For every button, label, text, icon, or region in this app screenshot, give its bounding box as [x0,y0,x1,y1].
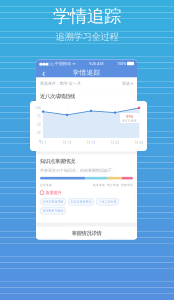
button[interactable]: 筛选 ▾ [122,81,133,86]
staticText: 10.25 [110,141,119,144]
staticText: 一元二次方程 [98,200,116,203]
staticText: 急需提升 [45,190,61,195]
staticText: 50 [37,123,41,126]
staticText: 91% [126,114,133,119]
staticText: 共有语文31个知识点，你的掌握情况如下： [40,168,116,173]
staticText: 10.16 [86,141,95,144]
staticText: 10.14 [62,141,71,144]
staticText: 学情追踪 [53,6,121,27]
staticText: 部分掌握 [105,183,119,187]
staticText: 10.30 [134,141,143,144]
staticText: 0 [39,139,41,143]
staticText: 病句辨析与修改 [42,209,63,212]
staticText: 文言文虚词用法 [70,200,91,203]
staticText: 筛选 ▾ [122,81,133,86]
staticText: 9:26 AM [89,61,104,66]
staticText: 近八次成绩趋线 [40,93,75,100]
staticText: 知识点掌握情况 [40,158,75,165]
staticText: 筛选条件：数学 近一月 [40,81,81,86]
staticText: 考试已曲率 [122,119,137,122]
button[interactable]: 一元二次方程 [96,198,119,205]
staticText: 追溯学习全过程 [55,31,118,42]
button[interactable]: 病句辨析与修改 [40,207,66,214]
button[interactable]: 古诗文阅读理解 [40,198,66,205]
staticText: 100% [117,61,126,66]
staticText: 掌握情况详情 [71,230,101,237]
staticText: 75 [37,115,41,118]
staticText: 完全掌握 [40,183,52,187]
staticText: 学情追踪 [72,68,100,77]
staticText: 古诗文阅读理解 [42,200,63,203]
staticText: 100 [35,106,41,110]
staticText: ‹ [42,65,45,80]
staticText: ●●●○○ 中国移动 ᯤ [39,61,76,66]
staticText: 25 [37,131,41,135]
button[interactable]: 文言文虚词用法 [68,198,94,205]
staticText: 基本掌握 [93,183,105,187]
button[interactable]: Back [39,67,48,77]
staticText: 需要加强 [119,183,133,187]
staticText: 10.1 [39,141,46,144]
